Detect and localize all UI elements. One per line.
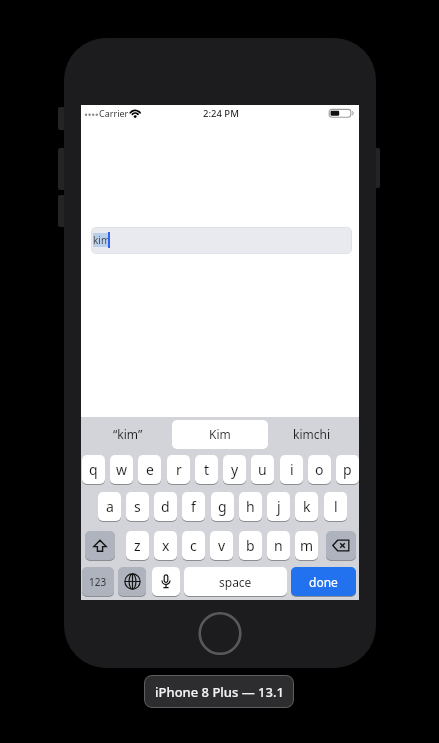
button[interactable]: q [82, 455, 105, 484]
staticText: g [218, 497, 227, 516]
staticText: Carrier [99, 107, 129, 119]
staticText: kimchi [293, 426, 330, 442]
staticText: l [334, 497, 338, 516]
button[interactable] [85, 531, 115, 560]
button[interactable]: iPhone 8 Plus — 13.1 [144, 675, 294, 708]
staticText: b [246, 536, 255, 555]
button[interactable]: m [295, 531, 318, 560]
staticText: o [315, 460, 324, 479]
button[interactable]: i [280, 455, 303, 484]
staticText: c [190, 536, 197, 555]
staticText: d [161, 497, 170, 516]
staticText: e [146, 460, 154, 479]
button[interactable]: d [154, 492, 177, 521]
button[interactable]: j [267, 492, 290, 521]
button[interactable]: done [291, 567, 356, 596]
button[interactable]: e [138, 455, 161, 484]
button[interactable]: space [184, 567, 287, 596]
button[interactable]: 123 [82, 567, 114, 596]
button[interactable]: n [267, 531, 290, 560]
staticText: q [89, 460, 98, 479]
button[interactable]: z [126, 531, 149, 560]
button[interactable]: k [295, 492, 318, 521]
staticText: y [231, 460, 239, 479]
staticText: p [343, 460, 352, 479]
button[interactable]: h [239, 492, 262, 521]
button[interactable]: b [239, 531, 262, 560]
button[interactable]: x [154, 531, 177, 560]
staticText: 2:24 PM [203, 107, 239, 120]
staticText: r [176, 460, 182, 479]
staticText: j [277, 497, 281, 516]
staticText: “kim” [113, 426, 143, 442]
button[interactable]: f [182, 492, 205, 521]
staticText: n [274, 536, 283, 555]
button[interactable]: u [251, 455, 274, 484]
button[interactable] [118, 567, 146, 596]
staticText: x [162, 536, 170, 555]
staticText: w [116, 460, 128, 479]
staticText: f [191, 497, 196, 516]
button[interactable]: “kim” [96, 419, 160, 448]
staticText: z [134, 536, 141, 555]
staticText: k [303, 497, 311, 516]
staticText: Kim [209, 426, 231, 442]
button[interactable]: p [336, 455, 359, 484]
button[interactable]: o [308, 455, 331, 484]
button[interactable] [326, 531, 356, 560]
staticText: s [134, 497, 141, 516]
staticText: iPhone 8 Plus — 13.1 [155, 683, 284, 701]
staticText: space [219, 574, 252, 590]
button[interactable]: g [211, 492, 234, 521]
staticText: m [300, 536, 314, 555]
button[interactable]: l [324, 492, 347, 521]
staticText: a [106, 497, 114, 516]
button[interactable]: w [110, 455, 133, 484]
button[interactable]: s [126, 492, 149, 521]
button[interactable]: y [223, 455, 246, 484]
staticText: i [290, 460, 294, 479]
button[interactable]: c [182, 531, 205, 560]
button[interactable] [152, 567, 180, 596]
button[interactable]: r [167, 455, 190, 484]
staticText: v [218, 536, 226, 555]
staticText: kim [93, 233, 111, 247]
button[interactable]: a [98, 492, 121, 521]
button[interactable]: Kim [188, 419, 252, 448]
staticText: u [258, 460, 267, 479]
button[interactable]: v [210, 531, 233, 560]
staticText: h [246, 497, 255, 516]
staticText: done [309, 574, 338, 590]
button[interactable]: t [195, 455, 218, 484]
button[interactable] [91, 227, 352, 254]
button[interactable]: kimchi [279, 419, 343, 448]
staticText: 123 [89, 575, 107, 589]
staticText: t [204, 460, 210, 479]
button[interactable] [172, 420, 268, 449]
